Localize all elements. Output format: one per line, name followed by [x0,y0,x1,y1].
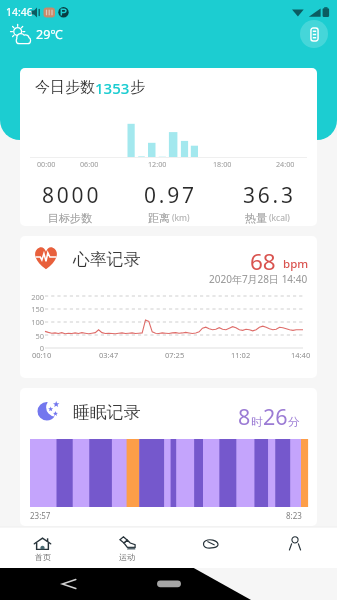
staticText: 运动 [119,552,135,562]
staticText: 00:00 [37,159,56,169]
staticText: (km) [172,212,190,224]
staticText: 8 [238,402,251,431]
staticText: 24:00 [276,159,295,169]
staticText: 0 [24,343,44,353]
button[interactable]: Profile [253,527,337,568]
staticText: bpm [283,256,309,272]
staticText: 目标步数 [48,211,92,225]
button[interactable]: 今日步数 [20,68,317,226]
staticText: 18:00 [213,159,232,169]
staticText: 距离 [148,211,170,225]
staticText: 热量 [245,211,267,225]
staticText: 29℃ [36,26,63,43]
button[interactable]: 心率记录 [20,236,317,378]
staticText: 8000 [42,181,102,210]
button[interactable]: Home [0,527,85,568]
button[interactable]: Exercise [85,527,169,568]
staticText: (kcal) [269,212,290,224]
button[interactable]: My band [300,20,328,48]
staticText: 12:00 [148,159,167,169]
staticText: 100 [24,317,44,327]
staticText: 1353 [95,78,130,98]
staticText: 8:23 [286,510,302,521]
staticText: 03:47 [99,350,119,360]
staticText: 150 [24,304,44,314]
staticText: 14:46 [6,5,33,19]
staticText: 11:02 [231,350,251,360]
staticText: 06:00 [80,159,99,169]
staticText: 200 [24,292,44,302]
staticText: 23:57 [30,510,51,521]
button[interactable]: Sleep [169,527,253,568]
staticText: 50 [24,331,44,341]
staticText: 分 [288,415,300,429]
staticText: 步 [130,78,145,97]
button[interactable]: 睡眠记录 [20,388,317,526]
staticText: 14:40 [291,350,311,360]
staticText: 0.97 [144,181,197,210]
staticText: 时 [251,415,263,429]
staticText: 68 [250,246,276,277]
staticText: 36.3 [243,181,296,210]
staticText: 睡眠记录 [73,402,141,423]
staticText: 26 [263,402,288,431]
staticText: 00:10 [32,350,52,360]
staticText: 2020年7月28日 14:40 [209,272,308,286]
staticText: 首页 [35,552,51,562]
staticText: 今日步数 [35,78,95,97]
staticText: 心率记录 [73,249,141,270]
staticText: 07:25 [165,350,185,360]
